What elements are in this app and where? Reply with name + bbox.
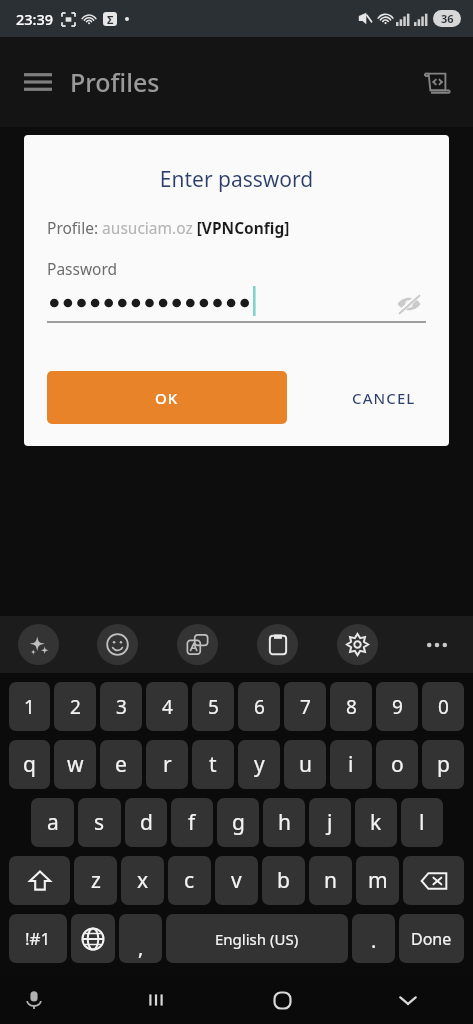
staticText: Profiles xyxy=(70,65,160,99)
button[interactable]: z xyxy=(74,856,117,905)
staticText: m xyxy=(368,866,388,895)
button[interactable]: Clipboard xyxy=(257,624,298,665)
button[interactable]: o xyxy=(376,740,418,789)
staticText: t xyxy=(209,750,217,779)
button[interactable]: English (US) xyxy=(166,914,348,963)
button[interactable]: More options xyxy=(417,625,457,665)
staticText: d xyxy=(140,808,153,837)
staticText: o xyxy=(391,750,404,779)
button[interactable]: Keyboard settings xyxy=(337,624,378,665)
button[interactable]: n xyxy=(309,856,352,905)
button[interactable]: k xyxy=(355,798,397,847)
button[interactable]: Toggle password visibility xyxy=(392,287,426,321)
button[interactable]: l xyxy=(401,798,443,847)
staticText: p xyxy=(437,750,450,779)
button[interactable]: x xyxy=(121,856,164,905)
staticText: z xyxy=(91,866,101,895)
staticText: , xyxy=(138,934,144,961)
button[interactable]: Emoji xyxy=(97,624,138,665)
button[interactable]: Recent apps xyxy=(132,976,180,1024)
button[interactable]: , xyxy=(119,914,162,963)
button[interactable]: v xyxy=(215,856,258,905)
button[interactable]: Shift xyxy=(9,856,70,905)
staticText: 4 xyxy=(162,694,173,720)
button[interactable]: Done xyxy=(399,914,464,963)
staticText: 23:39 xyxy=(16,9,54,29)
button[interactable]: OK xyxy=(47,371,287,424)
staticText: q xyxy=(23,750,36,779)
staticText: !#1 xyxy=(25,927,51,950)
button[interactable]: j xyxy=(309,798,351,847)
staticText: CANCEL xyxy=(352,388,416,408)
button[interactable]: Voice input xyxy=(14,980,54,1020)
staticText: Enter password xyxy=(24,165,449,194)
button[interactable]: h xyxy=(263,798,305,847)
button[interactable]: y xyxy=(238,740,280,789)
button[interactable]: 3 xyxy=(100,682,142,731)
button[interactable]: i xyxy=(330,740,372,789)
button[interactable]: r xyxy=(146,740,188,789)
button[interactable]: CANCEL xyxy=(342,378,426,418)
staticText: r xyxy=(163,750,172,779)
staticText: 6 xyxy=(254,694,265,720)
button[interactable]: t xyxy=(192,740,234,789)
staticText: e xyxy=(115,750,127,779)
button[interactable]: 8 xyxy=(330,682,372,731)
staticText: 1 xyxy=(24,694,35,720)
button[interactable]: Hide keyboard xyxy=(384,976,432,1024)
button[interactable]: c xyxy=(168,856,211,905)
button[interactable]: p xyxy=(422,740,464,789)
staticText: a xyxy=(47,808,59,837)
button[interactable]: 5 xyxy=(192,682,234,731)
staticText: Σ xyxy=(107,12,114,26)
button[interactable]: . xyxy=(352,914,395,963)
button[interactable]: Translate xyxy=(177,624,218,665)
button[interactable]: Change language xyxy=(71,914,115,963)
staticText: 2 xyxy=(70,694,81,720)
button[interactable]: w xyxy=(54,740,96,789)
staticText: l xyxy=(419,808,425,837)
button[interactable]: Import config xyxy=(415,60,459,104)
button[interactable]: 7 xyxy=(284,682,326,731)
button[interactable]: q xyxy=(9,740,50,789)
button[interactable]: m xyxy=(356,856,399,905)
button[interactable]: Home xyxy=(258,976,306,1024)
button[interactable]: e xyxy=(100,740,142,789)
staticText: 8 xyxy=(346,694,357,720)
staticText: 36 xyxy=(441,11,454,26)
staticText: u xyxy=(299,750,312,779)
button[interactable]: 4 xyxy=(146,682,188,731)
button[interactable]: 0 xyxy=(422,682,464,731)
button[interactable]: Backspace xyxy=(403,856,464,905)
staticText: 3 xyxy=(116,694,127,720)
staticText: 7 xyxy=(300,694,311,720)
button[interactable]: u xyxy=(284,740,326,789)
staticText: Profile: ausuciam.oz [VPNConfig] xyxy=(47,217,290,238)
button[interactable]: 2 xyxy=(54,682,96,731)
button[interactable]: a xyxy=(31,798,74,847)
button[interactable]: s xyxy=(78,798,121,847)
button[interactable]: d xyxy=(125,798,167,847)
button[interactable]: 9 xyxy=(376,682,418,731)
button[interactable]: AI writing xyxy=(18,624,59,665)
staticText: 5 xyxy=(208,694,219,720)
staticText: g xyxy=(232,808,245,837)
button[interactable]: b xyxy=(262,856,305,905)
staticText: b xyxy=(277,866,290,895)
staticText: h xyxy=(278,808,291,837)
button[interactable]: !#1 xyxy=(9,914,67,963)
button[interactable]: g xyxy=(217,798,259,847)
staticText: v xyxy=(231,866,242,895)
staticText: j xyxy=(327,808,333,837)
staticText: i xyxy=(348,750,354,779)
button[interactable]: Open navigation menu xyxy=(16,60,60,104)
button[interactable]: 1 xyxy=(9,682,50,731)
staticText: Done xyxy=(411,928,452,950)
staticText: c xyxy=(184,866,195,895)
staticText: k xyxy=(370,808,382,837)
button[interactable]: 6 xyxy=(238,682,280,731)
staticText: f xyxy=(188,808,196,837)
staticText: 0 xyxy=(438,694,449,720)
button[interactable]: f xyxy=(171,798,213,847)
staticText: 9 xyxy=(392,694,403,720)
